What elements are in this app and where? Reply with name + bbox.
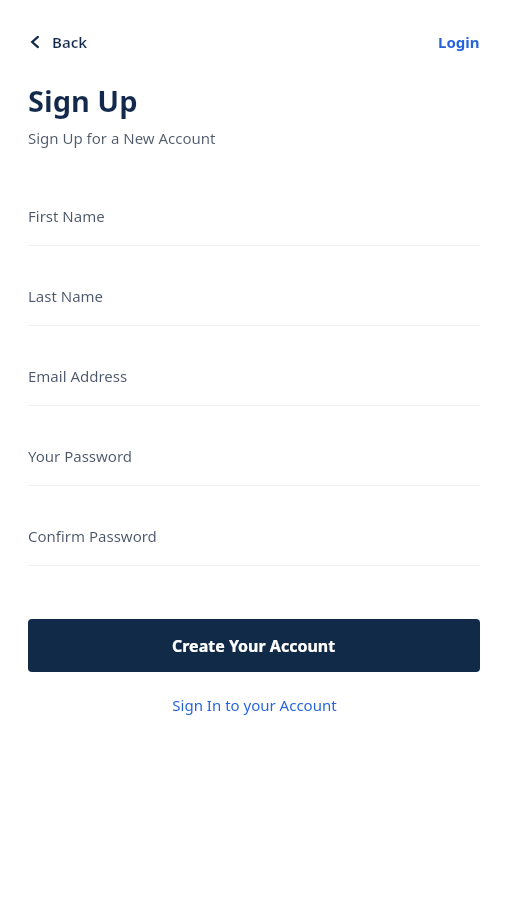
- staticText: Sign Up for a New Account: [28, 128, 216, 148]
- button[interactable]: Your Password: [28, 446, 480, 486]
- staticText: Sign In to your Account: [172, 695, 337, 715]
- staticText: Your Password: [28, 446, 133, 466]
- staticText: Confirm Password: [28, 526, 157, 546]
- staticText: Login: [438, 32, 480, 52]
- staticText: Sign Up: [28, 81, 138, 120]
- button[interactable]: Email Address: [28, 366, 480, 406]
- button[interactable]: Back: [26, 29, 90, 55]
- staticText: Last Name: [28, 286, 104, 306]
- button[interactable]: Create Your Account: [28, 619, 480, 672]
- button[interactable]: Sign In to your Account: [28, 690, 480, 720]
- staticText: Email Address: [28, 366, 128, 386]
- button[interactable]: Confirm Password: [28, 526, 480, 566]
- staticText: Create Your Account: [172, 635, 336, 657]
- staticText: First Name: [28, 206, 105, 226]
- button[interactable]: Last Name: [28, 286, 480, 326]
- staticText: Back: [52, 32, 88, 52]
- button[interactable]: Login: [436, 29, 482, 55]
- button[interactable]: First Name: [28, 206, 480, 246]
